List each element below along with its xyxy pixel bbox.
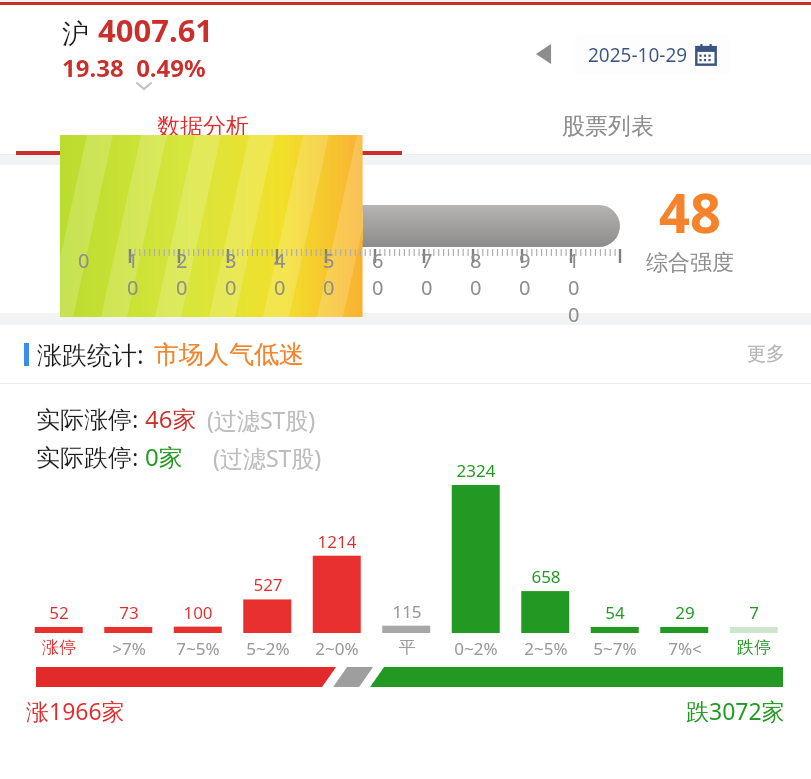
button[interactable]: 股票列表	[405, 97, 811, 155]
staticText: 涨跌统计:	[37, 337, 144, 371]
button[interactable]: 2025-10-29	[575, 35, 730, 75]
staticText: 54	[580, 601, 650, 624]
staticText: 7	[719, 601, 789, 624]
staticText: 跌3072家	[686, 695, 785, 726]
staticText: 实际跌停:	[36, 440, 139, 473]
staticText: 跌停	[719, 637, 789, 658]
button[interactable]: 数据分析	[0, 97, 405, 155]
staticText: >7%	[94, 637, 164, 660]
staticText: (过滤ST股)	[213, 442, 322, 473]
staticText: 沪	[62, 17, 89, 51]
button[interactable]: Previous day	[528, 36, 564, 72]
button[interactable]: 更多	[741, 336, 791, 372]
staticText: 更多	[747, 342, 785, 366]
staticText: 100	[163, 601, 233, 624]
staticText: 46家	[145, 402, 197, 435]
staticText: 115	[372, 600, 442, 623]
staticText: 1214	[302, 530, 372, 553]
staticText: 7%<	[650, 637, 720, 660]
staticText: 2025-10-29	[588, 42, 688, 68]
staticText: (过滤ST股)	[207, 404, 316, 435]
staticText: 0家	[145, 440, 183, 473]
staticText: 涨1966家	[26, 695, 125, 726]
staticText: 48	[659, 175, 721, 249]
staticText: 73	[94, 601, 164, 624]
staticText: 5~7%	[580, 637, 650, 660]
staticText: 涨停	[24, 637, 94, 658]
staticText: 市场人气低迷	[154, 339, 304, 370]
staticText: 5~2%	[233, 637, 303, 660]
staticText: 2~0%	[302, 637, 372, 660]
staticText: 0~2%	[441, 637, 511, 660]
staticText: 19.38 0.49%	[62, 51, 206, 84]
staticText: 实际涨停:	[36, 402, 139, 435]
staticText: 平	[372, 637, 442, 658]
staticText: 7~5%	[163, 637, 233, 660]
button[interactable]: 沪	[62, 9, 214, 84]
staticText: 527	[233, 573, 303, 596]
staticText: 658	[511, 565, 581, 588]
staticText: 29	[650, 601, 720, 624]
staticText: 2~5%	[511, 637, 581, 660]
staticText: 数据分析	[157, 112, 249, 141]
staticText: 综合强度	[646, 249, 734, 277]
staticText: 股票列表	[562, 112, 654, 141]
staticText: 52	[24, 601, 94, 624]
staticText: 4007.61	[98, 9, 214, 51]
staticText: 2324	[441, 459, 511, 482]
